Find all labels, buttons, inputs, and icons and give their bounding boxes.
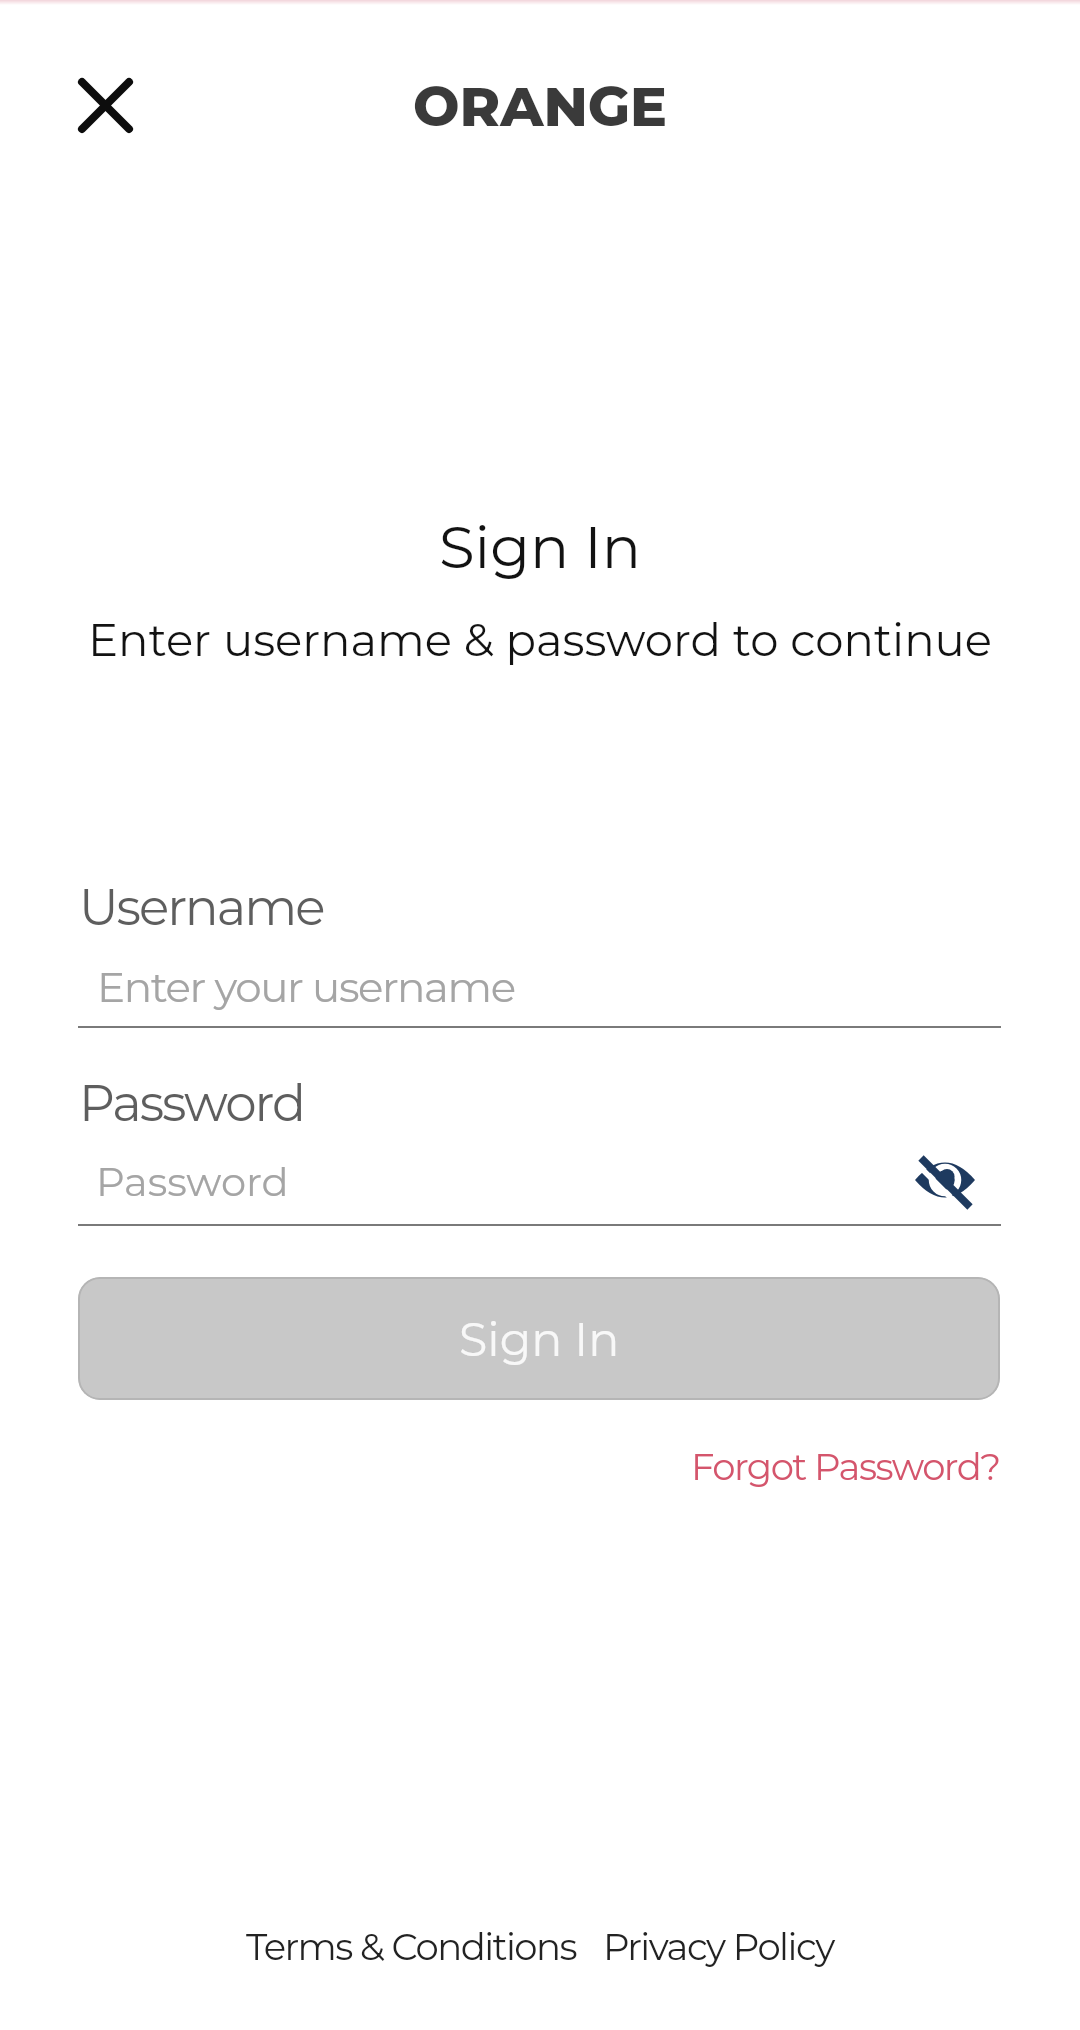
staticText: Enter your username [97,961,515,1012]
button[interactable]: Terms & Conditions [246,1924,577,1969]
staticText: Sign In [0,512,1080,583]
staticText: Password [79,1073,304,1134]
button[interactable]: Privacy Policy [603,1924,834,1969]
button[interactable]: Password [78,1138,1001,1226]
staticText: Username [79,877,324,938]
staticText: Enter username & password to continue [0,612,1080,667]
staticText: Password [96,1157,289,1206]
button[interactable]: Forgot Password? [691,1444,1000,1489]
button[interactable] [913,1145,977,1209]
button[interactable]: Enter your username [78,940,1001,1028]
staticText: ORANGE [0,73,1080,140]
staticText: Sign In [459,1311,620,1367]
button[interactable] [74,74,137,137]
button[interactable]: Sign In [78,1277,1000,1400]
